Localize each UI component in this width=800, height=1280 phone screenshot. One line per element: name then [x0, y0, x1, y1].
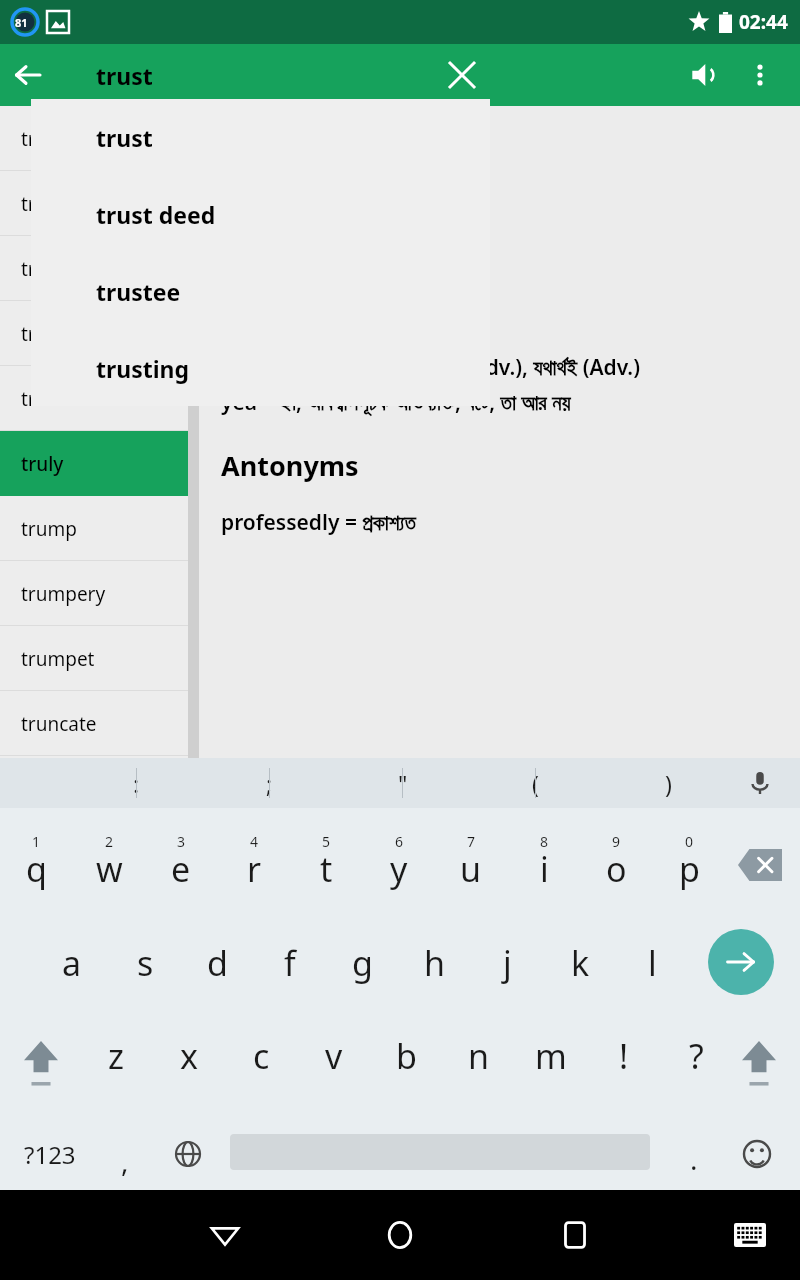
button[interactable]: 5 — [290, 808, 362, 913]
button[interactable]: a — [36, 913, 108, 1013]
staticText: k — [571, 940, 590, 986]
button[interactable]: 6 — [363, 808, 435, 913]
button[interactable]: k — [544, 913, 616, 1013]
button[interactable]: l — [616, 913, 688, 1013]
staticText: trusting — [96, 353, 190, 384]
staticText: n — [468, 1033, 490, 1079]
button[interactable]: Backspace — [730, 835, 790, 895]
staticText: t — [320, 846, 333, 892]
button[interactable]: 9 — [580, 808, 652, 913]
button[interactable]: 3 — [145, 808, 217, 913]
staticText: ! — [619, 1033, 629, 1079]
button[interactable]: , — [85, 1118, 165, 1190]
staticText: verily = সত্যই (Adv.), নিশ্চয়ই (Adv.), … — [221, 353, 640, 382]
button[interactable]: truffle — [0, 366, 199, 431]
button[interactable]: m — [515, 1013, 587, 1099]
button[interactable]: ; — [203, 758, 336, 808]
button[interactable]: trust — [31, 99, 490, 176]
staticText: b — [396, 1033, 417, 1079]
staticText: 81 — [15, 15, 28, 30]
button[interactable]: ) — [602, 758, 735, 808]
button[interactable]: ? — [660, 1013, 732, 1099]
button[interactable]: Shift — [724, 1031, 794, 1097]
staticText: 6 — [395, 832, 404, 851]
button[interactable]: b — [370, 1013, 442, 1099]
staticText: ; — [266, 768, 273, 799]
staticText: Antonyms — [221, 447, 359, 484]
button[interactable]: tr — [0, 106, 199, 171]
button[interactable]: . — [655, 1118, 733, 1190]
button[interactable]: trusting — [31, 330, 490, 406]
button[interactable]: f — [254, 913, 326, 1013]
button[interactable]: truly — [0, 431, 199, 496]
button[interactable]: trump — [0, 496, 199, 561]
staticText: g — [352, 940, 373, 986]
button[interactable]: c — [225, 1013, 297, 1099]
button[interactable]: : — [70, 758, 203, 808]
button[interactable]: ! — [588, 1013, 660, 1099]
staticText: 1 — [32, 832, 41, 851]
button[interactable]: s — [109, 913, 181, 1013]
button[interactable]: trust deed — [31, 176, 490, 253]
button[interactable]: Change language — [155, 1118, 221, 1190]
button[interactable]: Hide keyboard — [718, 1203, 782, 1267]
staticText: q — [26, 846, 47, 892]
staticText: trumpet — [21, 646, 95, 672]
button[interactable]: ?123 — [2, 1118, 98, 1190]
button[interactable]: v — [298, 1013, 370, 1099]
button[interactable]: Voice input — [738, 761, 782, 805]
button[interactable]: tr — [0, 171, 199, 236]
button[interactable]: z — [80, 1013, 152, 1099]
staticText: tr — [21, 321, 36, 347]
button[interactable]: More options — [732, 47, 788, 103]
button[interactable]: Back — [190, 1200, 260, 1270]
staticText: yea = হ্যাঁ, অবিশ্বাসসূচক অভিব্যক্তি, বট… — [221, 388, 571, 417]
staticText: 7 — [467, 832, 476, 851]
button[interactable]: Shift — [6, 1031, 76, 1097]
staticText: trust deed — [96, 199, 216, 230]
button[interactable]: trustee — [31, 253, 490, 330]
button[interactable]: 2 — [73, 808, 145, 913]
button[interactable]: Back — [0, 47, 56, 103]
staticText: : — [133, 768, 140, 799]
button[interactable]: j — [471, 913, 543, 1013]
button[interactable]: h — [399, 913, 471, 1013]
button[interactable]: trumpery — [0, 561, 199, 626]
button[interactable]: Recents — [540, 1200, 610, 1270]
staticText: v — [325, 1033, 343, 1079]
button[interactable]: " — [336, 758, 469, 808]
button[interactable]: 1 — [0, 808, 72, 913]
button[interactable]: 0 — [653, 808, 725, 913]
button[interactable]: Pronounce — [676, 47, 732, 103]
button[interactable]: Clear — [434, 47, 490, 103]
staticText: professedly = প্রকাশ্যত — [221, 508, 416, 537]
staticText: l — [648, 940, 657, 986]
button[interactable]: Home — [365, 1200, 435, 1270]
button[interactable]: d — [181, 913, 253, 1013]
staticText: d — [207, 940, 228, 986]
button[interactable]: ( — [469, 758, 602, 808]
button[interactable]: Emoji — [726, 1118, 788, 1190]
staticText: e — [171, 846, 191, 892]
button[interactable]: 8 — [508, 808, 580, 913]
staticText: w — [96, 846, 123, 892]
button[interactable]: Enter — [708, 929, 774, 995]
staticText: m — [535, 1033, 567, 1079]
staticText: ?123 — [24, 1138, 76, 1171]
staticText: 02:44 — [739, 9, 788, 35]
button[interactable]: g — [326, 913, 398, 1013]
button[interactable]: n — [443, 1013, 515, 1099]
button[interactable]: x — [153, 1013, 225, 1099]
button[interactable]: tr — [0, 301, 199, 366]
staticText: truly — [21, 451, 64, 477]
button[interactable]: 4 — [218, 808, 290, 913]
button[interactable]: trumpet — [0, 626, 199, 691]
staticText: i — [540, 846, 549, 892]
staticText: r — [247, 846, 262, 892]
button[interactable]: tr — [0, 236, 199, 301]
button[interactable]: truncate — [0, 691, 199, 756]
button[interactable]: 7 — [435, 808, 507, 913]
